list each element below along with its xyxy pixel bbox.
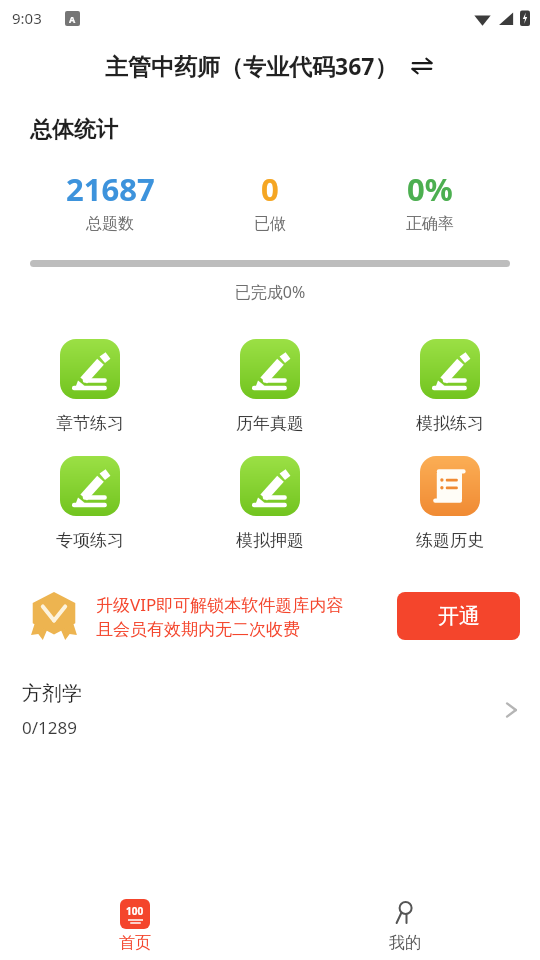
staticText: 已做 xyxy=(254,214,286,234)
button[interactable]: 方剂学 xyxy=(0,671,540,749)
staticText: 已完成0% xyxy=(30,281,510,303)
staticText: 正确率 xyxy=(406,214,454,234)
staticText: 练题历史 xyxy=(416,530,484,551)
button[interactable]: 切换科目 xyxy=(408,52,436,80)
staticText: 升级VIP即可解锁本软件题库内容 xyxy=(96,593,344,616)
button[interactable]: 模拟练习 xyxy=(360,339,540,434)
staticText: 开通 xyxy=(438,603,480,629)
button[interactable]: 模拟押题 xyxy=(180,456,360,551)
staticText: 模拟押题 xyxy=(236,530,304,551)
button[interactable]: 练题历史 xyxy=(360,456,540,551)
button[interactable]: 章节练习 xyxy=(0,339,180,434)
staticText: 21687 xyxy=(66,168,155,210)
staticText: 历年真题 xyxy=(236,413,304,434)
staticText: 章节练习 xyxy=(56,413,124,434)
staticText: 0% xyxy=(407,168,453,210)
button[interactable]: 开通 xyxy=(397,592,520,640)
staticText: 且会员有效期内无二次收费 xyxy=(96,619,300,640)
button[interactable]: 历年真题 xyxy=(180,339,360,434)
button[interactable]: 专项练习 xyxy=(0,456,180,551)
staticText: 总体统计 xyxy=(30,116,118,144)
staticText: 方剂学 xyxy=(22,681,82,706)
staticText: 专项练习 xyxy=(56,530,124,551)
staticText: 0 xyxy=(261,168,279,210)
staticText: 我的 xyxy=(389,933,421,953)
button[interactable]: 升级VIP即可解锁本软件题库内容 xyxy=(12,575,528,657)
staticText: 100 xyxy=(126,904,144,918)
staticText: A xyxy=(69,13,76,25)
staticText: 0/1289 xyxy=(22,716,77,739)
staticText: 模拟练习 xyxy=(416,413,484,434)
staticText: 9:03 xyxy=(12,8,42,28)
button[interactable]: 100 xyxy=(0,892,270,960)
staticText: 主管中药师（专业代码367） xyxy=(105,50,398,81)
staticText: 总题数 xyxy=(86,214,134,234)
staticText: 首页 xyxy=(119,933,151,953)
button[interactable]: 我的 xyxy=(270,892,540,960)
